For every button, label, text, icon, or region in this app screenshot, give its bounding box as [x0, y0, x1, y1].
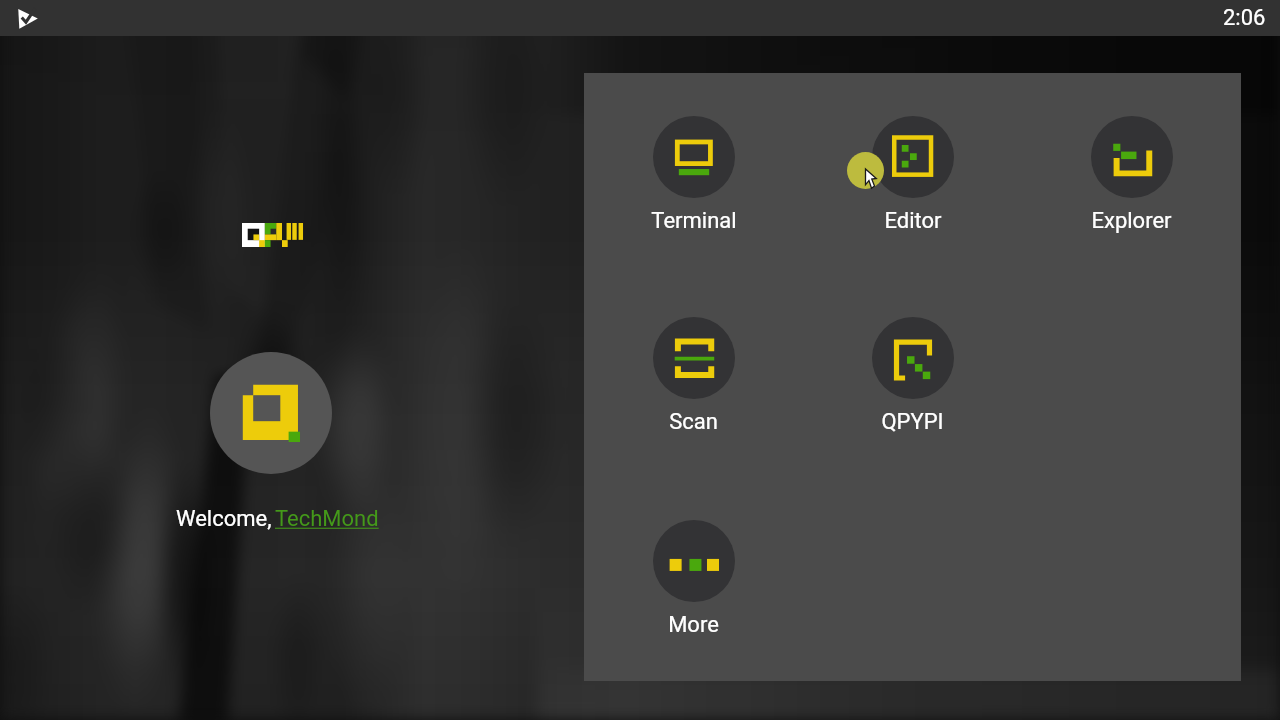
button[interactable]: Terminal [584, 116, 803, 234]
staticText: Terminal [651, 208, 737, 234]
button[interactable]: Editor [803, 116, 1022, 234]
staticText: QPYPI [881, 409, 944, 435]
staticText: Explorer [1091, 208, 1172, 234]
button[interactable]: Profile avatar [210, 352, 332, 474]
button[interactable]: App logo [17, 8, 38, 29]
button[interactable]: Explorer [1022, 116, 1241, 234]
staticText: Scan [669, 409, 718, 435]
button[interactable]: TechMond [275, 506, 379, 532]
staticText: 2:06 [1223, 5, 1266, 31]
staticText: Editor [884, 208, 942, 234]
button[interactable]: Scan [584, 317, 803, 435]
staticText: Welcome, [176, 506, 272, 532]
button[interactable]: More [584, 520, 803, 638]
staticText: More [668, 612, 719, 638]
button[interactable]: QPYPI [803, 317, 1022, 435]
